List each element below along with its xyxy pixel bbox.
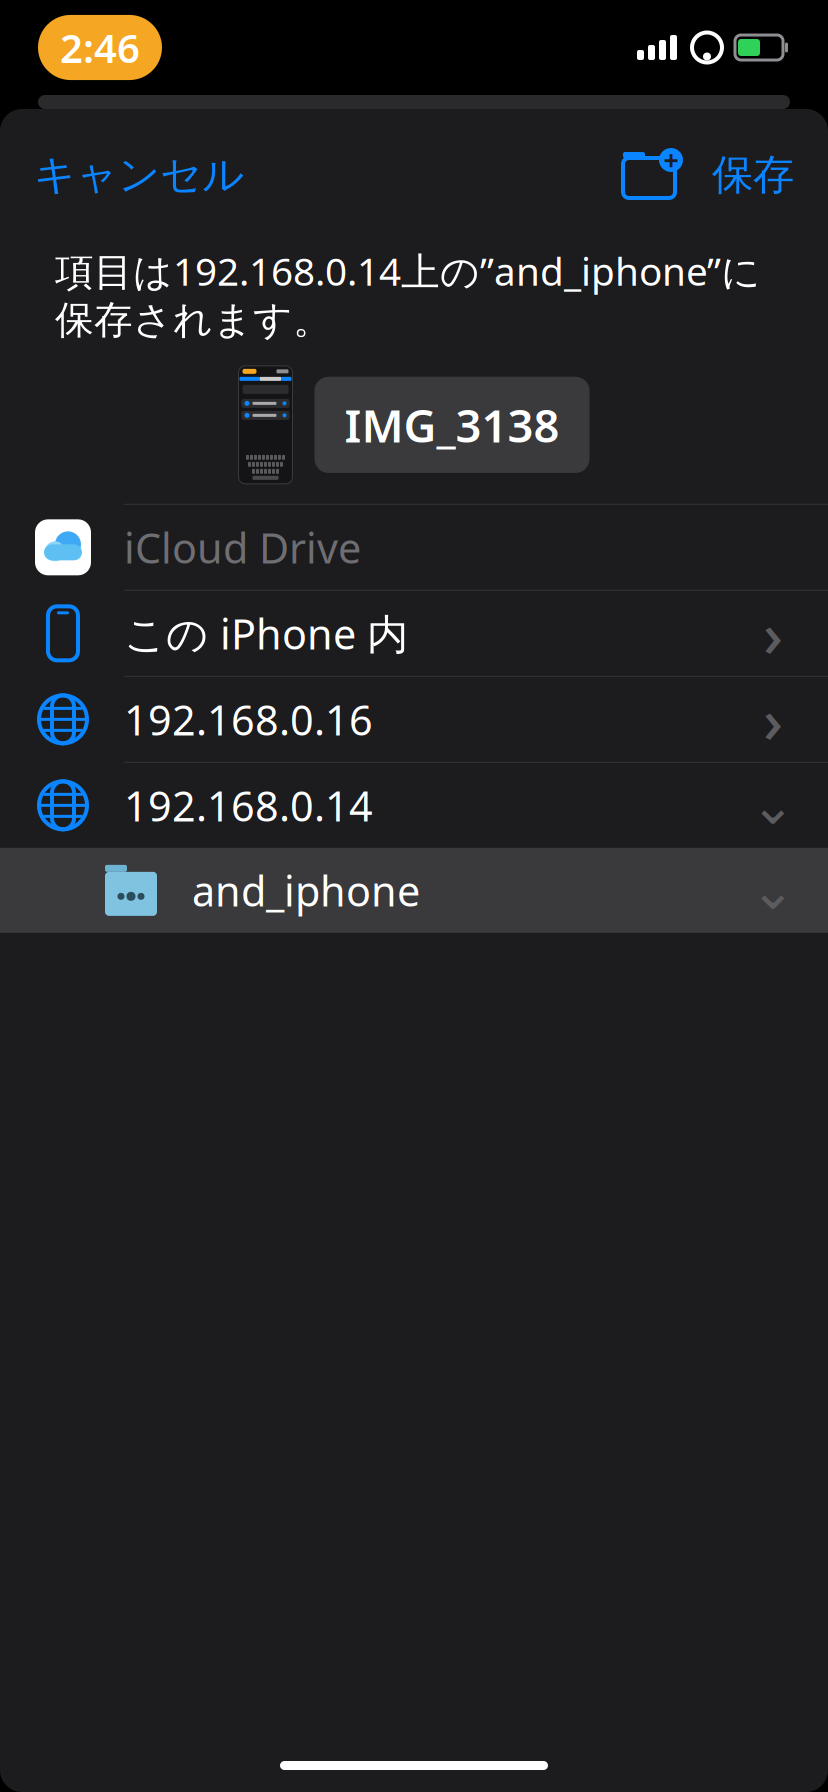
- staticText: 項目は192.168.0.14上の”and_iphone”に保存されます。: [55, 245, 761, 344]
- button[interactable]: この iPhone 内: [0, 591, 828, 676]
- staticText: この iPhone 内: [124, 606, 408, 661]
- staticText: 保存: [712, 150, 794, 200]
- staticText: 192.168.0.14: [124, 778, 373, 833]
- staticText: +: [663, 142, 678, 178]
- staticText: キャンセル: [34, 150, 244, 200]
- button[interactable]: 192.168.0.16: [0, 677, 828, 762]
- button[interactable]: iCloud Drive: [0, 505, 828, 590]
- staticText: and_iphone: [192, 863, 420, 918]
- button[interactable]: 新規フォルダ: [604, 135, 694, 215]
- button[interactable]: キャンセル: [0, 136, 278, 214]
- button[interactable]: and_iphone: [0, 848, 828, 933]
- staticText: 2:46: [60, 21, 140, 74]
- button[interactable]: 192.168.0.14: [0, 763, 828, 848]
- staticText: 192.168.0.16: [124, 692, 373, 747]
- staticText: ›: [763, 593, 783, 674]
- staticText: iCloud Drive: [124, 520, 361, 575]
- button[interactable]: IMG_3138: [314, 377, 589, 473]
- staticText: ⌄: [750, 860, 795, 921]
- staticText: ›: [763, 679, 783, 760]
- staticText: ⌄: [750, 775, 795, 836]
- staticText: IMG_3138: [344, 395, 559, 455]
- button[interactable]: 保存: [694, 136, 828, 214]
